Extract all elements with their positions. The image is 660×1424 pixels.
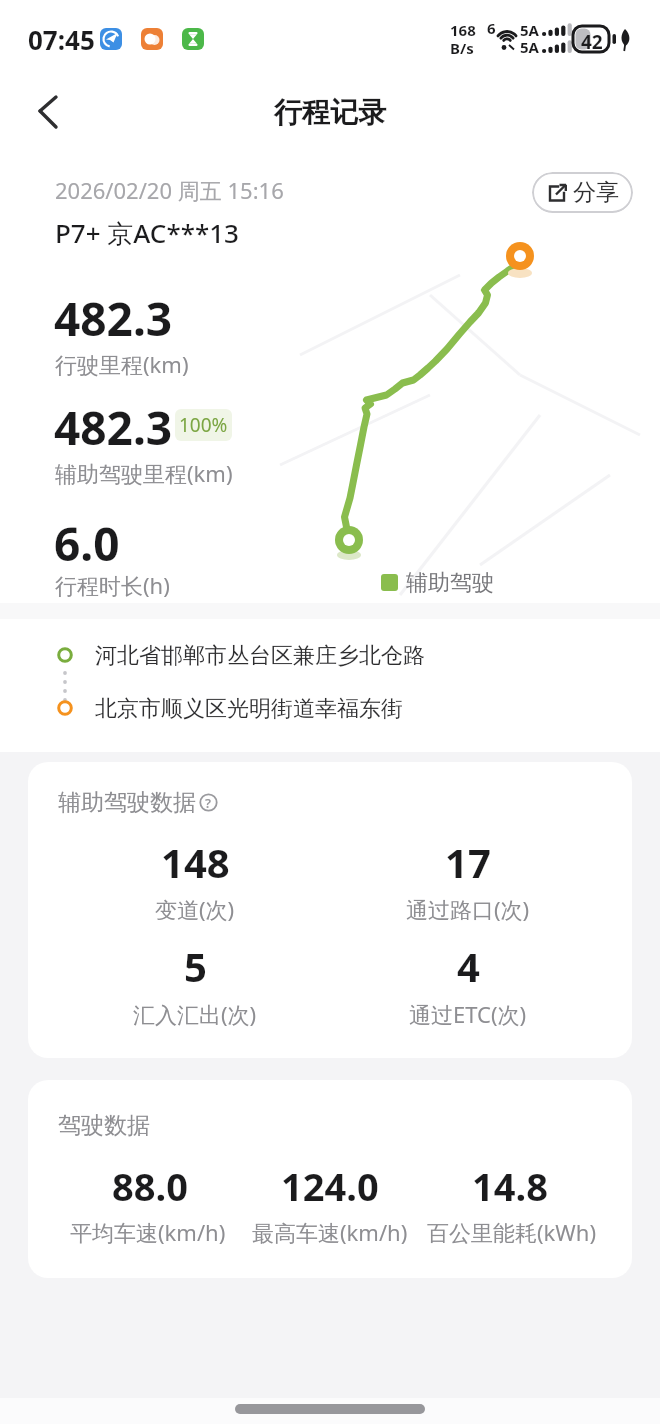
- staticText: 辅助驾驶: [406, 569, 494, 597]
- staticText: 6: [487, 18, 496, 38]
- button[interactable]: [27, 90, 73, 134]
- staticText: 482.3: [54, 396, 173, 459]
- staticText: 变道(次): [155, 894, 235, 924]
- staticText: 北京市顺义区光明街道幸福东街: [95, 695, 403, 723]
- staticText: 17: [445, 835, 491, 889]
- staticText: 分享: [573, 178, 619, 207]
- staticText: P7+ 京AC***13: [55, 215, 239, 251]
- staticText: 124.0: [281, 1160, 379, 1212]
- staticText: 5A: [520, 20, 539, 40]
- staticText: 148: [161, 835, 230, 889]
- staticText: 07:45: [28, 22, 95, 57]
- staticText: B/s: [450, 38, 474, 58]
- button[interactable]: 分享: [532, 172, 633, 213]
- staticText: 6.0: [54, 512, 120, 575]
- staticText: 汇入汇出(次): [133, 999, 257, 1029]
- staticText: 行程记录: [274, 95, 386, 130]
- staticText: 最高车速(km/h): [252, 1217, 408, 1247]
- staticText: ?: [205, 794, 211, 810]
- staticText: 平均车速(km/h): [70, 1217, 226, 1247]
- staticText: 辅助驾驶里程(km): [55, 458, 233, 488]
- staticText: 88.0: [112, 1160, 188, 1212]
- staticText: 14.8: [472, 1160, 548, 1212]
- staticText: 5A: [520, 37, 539, 57]
- staticText: 河北省邯郸市丛台区兼庄乡北仓路: [95, 642, 425, 670]
- staticText: 辅助驾驶数据: [58, 788, 196, 817]
- staticText: 2026/02/20 周五 15:16: [55, 175, 284, 205]
- staticText: 5: [184, 939, 207, 993]
- staticText: 行驶里程(km): [55, 349, 189, 379]
- staticText: 通过路口(次): [406, 894, 530, 924]
- staticText: 通过ETC(次): [409, 999, 527, 1029]
- staticText: 驾驶数据: [58, 1111, 150, 1140]
- staticText: 482.3: [54, 287, 173, 350]
- staticText: 100%: [179, 412, 228, 438]
- staticText: 168: [450, 20, 476, 40]
- staticText: 42: [581, 29, 603, 51]
- staticText: 4: [457, 939, 480, 993]
- staticText: 百公里能耗(kWh): [427, 1217, 597, 1247]
- staticText: 行程时长(h): [55, 570, 170, 600]
